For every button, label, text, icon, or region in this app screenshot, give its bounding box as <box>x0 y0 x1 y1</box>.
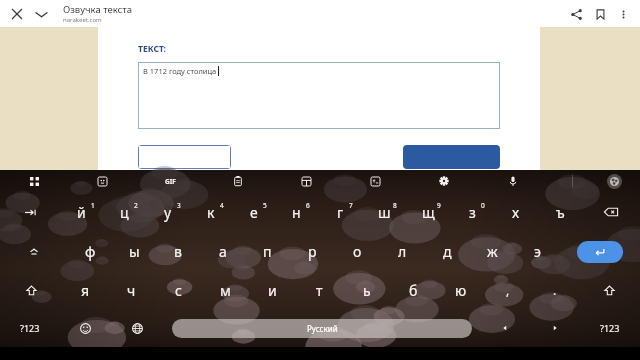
button[interactable]: о <box>335 232 380 271</box>
button[interactable]: ъ <box>538 192 582 232</box>
button[interactable]: More options <box>613 4 633 24</box>
staticText: narakeet.com <box>63 16 102 24</box>
staticText: щ <box>422 203 435 222</box>
button[interactable]: Symbols <box>580 309 640 347</box>
button[interactable]: Emoji <box>60 309 110 347</box>
button[interactable]: Stickers <box>92 171 112 191</box>
button[interactable]: х <box>494 192 538 232</box>
staticText: с <box>175 281 182 300</box>
button[interactable]: ю <box>437 271 484 309</box>
button[interactable]: Move cursor left <box>480 309 530 347</box>
staticText: д <box>443 242 452 261</box>
button[interactable]: Backspace <box>582 192 640 232</box>
button[interactable]: к <box>189 192 232 232</box>
staticText: р <box>308 242 317 261</box>
staticText: ц <box>120 203 129 222</box>
button[interactable]: Tab <box>0 192 60 232</box>
staticText: 9 <box>437 201 441 210</box>
button[interactable]: ч <box>108 271 155 309</box>
staticText: 8 <box>393 201 397 210</box>
button[interactable]: б <box>390 271 437 309</box>
button[interactable]: г <box>318 192 362 232</box>
button[interactable]: Voice input <box>503 171 523 191</box>
button[interactable]: ы <box>112 232 156 271</box>
staticText: ш <box>378 203 391 222</box>
button[interactable]: т <box>296 271 343 309</box>
button[interactable]: е <box>232 192 275 232</box>
button[interactable]: Primary action <box>403 145 500 169</box>
staticText: ?123 <box>600 322 620 334</box>
button[interactable]: Move cursor right <box>530 309 580 347</box>
staticText: ?123 <box>20 322 40 334</box>
button[interactable]: , <box>484 271 531 309</box>
button[interactable]: Settings <box>434 171 454 191</box>
button[interactable]: Symbols <box>0 309 60 347</box>
button[interactable]: р <box>290 232 335 271</box>
button[interactable]: GIF <box>160 171 180 191</box>
staticText: м <box>220 281 231 300</box>
button[interactable]: з <box>450 192 494 232</box>
staticText: е <box>250 203 258 222</box>
button[interactable]: Apps <box>24 171 44 191</box>
button[interactable]: ь <box>343 271 390 309</box>
button[interactable]: ж <box>470 232 515 271</box>
staticText: ч <box>127 281 136 300</box>
staticText: 5 <box>263 201 267 210</box>
button[interactable]: с <box>155 271 202 309</box>
button[interactable]: д <box>425 232 470 271</box>
button[interactable]: Translate <box>365 171 385 191</box>
button[interactable]: Bookmark <box>589 3 611 25</box>
staticText: 0 <box>481 201 485 210</box>
staticText: 1 <box>91 201 95 210</box>
button[interactable]: й <box>60 192 103 232</box>
staticText: 7 <box>349 201 353 210</box>
staticText: и <box>268 281 277 300</box>
staticText: з <box>469 203 476 222</box>
button[interactable]: э <box>515 232 560 271</box>
button[interactable]: щ <box>406 192 450 232</box>
button[interactable]: я <box>62 271 108 309</box>
button[interactable]: а <box>200 232 245 271</box>
staticText: х <box>512 203 520 222</box>
staticText: ТЕКСТ: <box>138 43 166 55</box>
button[interactable]: Layouts <box>296 171 316 191</box>
button[interactable]: Shift <box>0 271 62 309</box>
staticText: п <box>263 242 272 261</box>
button[interactable]: Theme <box>607 174 622 189</box>
staticText: ж <box>487 242 498 261</box>
button[interactable]: Enter <box>577 241 623 263</box>
button[interactable]: л <box>380 232 425 271</box>
staticText: Русский <box>307 323 338 334</box>
button[interactable]: Collapse <box>31 4 51 24</box>
button[interactable]: ф <box>68 232 112 271</box>
button[interactable]: . <box>531 271 578 309</box>
staticText: 2 <box>134 201 138 210</box>
staticText: 4 <box>220 201 224 210</box>
staticText: у <box>164 203 172 222</box>
button[interactable]: Share <box>565 3 587 25</box>
button[interactable]: м <box>202 271 249 309</box>
button[interactable]: Change language <box>110 309 164 347</box>
button[interactable]: Space <box>172 319 472 338</box>
button[interactable]: В 1712 году столица <box>138 62 500 129</box>
button[interactable]: Shift <box>578 271 640 309</box>
button[interactable]: Secondary action <box>138 145 231 169</box>
staticText: Озвучка текста <box>63 3 132 16</box>
button[interactable]: ш <box>362 192 406 232</box>
button[interactable]: и <box>249 271 296 309</box>
staticText: В 1712 году столица <box>143 66 217 76</box>
staticText: й <box>77 203 86 222</box>
staticText: а <box>219 242 227 261</box>
button[interactable]: Caps lock <box>0 232 68 271</box>
staticText: г <box>337 203 344 222</box>
button[interactable]: Clipboard <box>228 171 248 191</box>
button[interactable]: ц <box>103 192 146 232</box>
staticText: о <box>353 242 362 261</box>
button[interactable]: н <box>275 192 318 232</box>
staticText: ь <box>363 281 371 300</box>
button[interactable]: у <box>146 192 189 232</box>
button[interactable]: Close <box>7 4 27 24</box>
button[interactable]: п <box>245 232 290 271</box>
staticText: к <box>207 203 215 222</box>
button[interactable]: в <box>156 232 200 271</box>
